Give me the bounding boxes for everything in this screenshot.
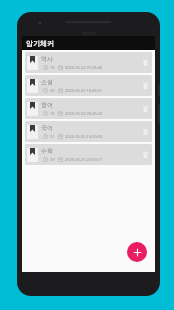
staticText: 20: [50, 88, 55, 93]
button[interactable]: 수학: [25, 144, 152, 165]
staticText: 소설: [41, 78, 53, 86]
staticText: 2020.05.20 10:45:41: [65, 88, 103, 93]
staticText: 국어: [41, 124, 53, 132]
button[interactable]: Delete: [140, 98, 150, 119]
staticText: 31: [50, 134, 55, 139]
button[interactable]: Add: [127, 242, 147, 262]
button[interactable]: Delete: [140, 144, 150, 165]
staticText: 2020.05.20 10:00:03: [65, 134, 103, 139]
button[interactable]: Delete: [140, 121, 150, 142]
staticText: 2020.05.02 09:45:22: [65, 111, 103, 116]
staticText: 수학: [41, 147, 53, 155]
staticText: 2020.05.22 01:05:46: [65, 65, 103, 70]
staticText: 암기체커: [26, 39, 54, 48]
staticText: 29: [50, 157, 55, 162]
button[interactable]: Delete: [140, 75, 150, 96]
staticText: 15: [50, 111, 55, 116]
button[interactable]: 소설: [25, 75, 152, 96]
staticText: 2020.05.25 23:50:11: [65, 157, 103, 162]
staticText: 역사: [41, 55, 53, 63]
button[interactable]: 영어: [25, 98, 152, 119]
staticText: 19: [50, 65, 55, 70]
staticText: 영어: [41, 101, 53, 109]
button[interactable]: 국어: [25, 121, 152, 142]
button[interactable]: Delete: [140, 52, 150, 73]
button[interactable]: 역사: [25, 52, 152, 73]
